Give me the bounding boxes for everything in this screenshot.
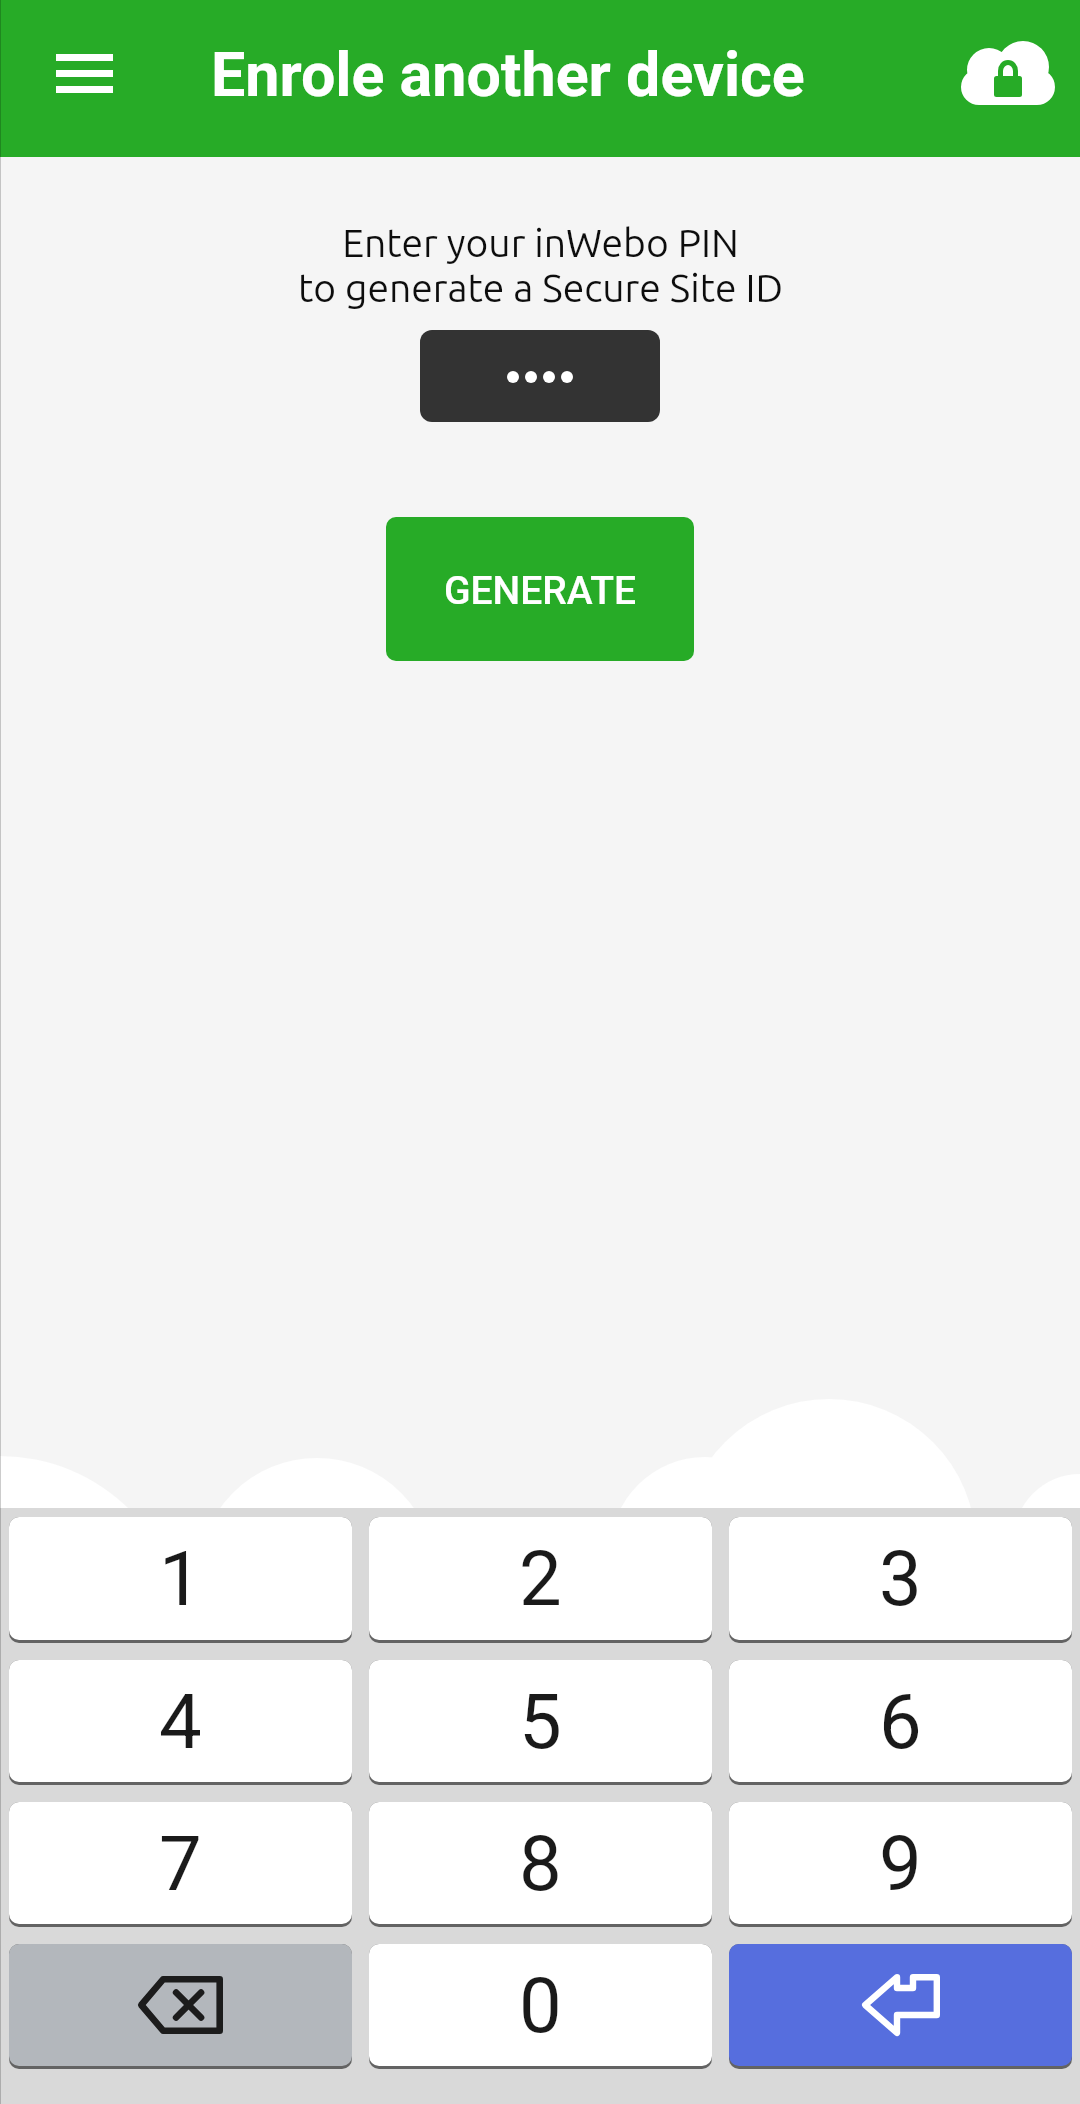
button[interactable]: 9 <box>729 1802 1072 1927</box>
staticText: 4 <box>159 1677 202 1766</box>
button[interactable]: 2 <box>369 1517 712 1643</box>
button[interactable]: Enter <box>729 1944 1072 2069</box>
staticText: 5 <box>519 1677 562 1766</box>
button[interactable]: Secure cloud storage <box>949 17 1067 141</box>
staticText: 0 <box>519 1961 562 2050</box>
staticText: Enrole another device <box>211 39 805 110</box>
staticText: 9 <box>879 1819 922 1908</box>
button[interactable]: Delete <box>9 1944 352 2069</box>
button[interactable]: 3 <box>729 1517 1072 1643</box>
button[interactable]: 0 <box>369 1944 712 2069</box>
button[interactable]: GENERATE <box>386 517 694 661</box>
staticText: 8 <box>519 1819 562 1908</box>
button[interactable]: 8 <box>369 1802 712 1927</box>
button[interactable]: Open navigation menu <box>28 17 140 141</box>
staticText: 1 <box>159 1534 202 1623</box>
button[interactable] <box>420 330 660 422</box>
button[interactable]: 4 <box>9 1660 352 1785</box>
staticText: 6 <box>879 1677 922 1766</box>
button[interactable]: 6 <box>729 1660 1072 1785</box>
staticText: Enter your inWebo PIN to generate a Secu… <box>298 221 783 309</box>
staticText: 7 <box>159 1819 202 1908</box>
staticText: 3 <box>879 1534 922 1623</box>
button[interactable]: 5 <box>369 1660 712 1785</box>
staticText: 2 <box>519 1534 562 1623</box>
button[interactable]: 1 <box>9 1517 352 1643</box>
staticText: GENERATE <box>444 568 637 614</box>
button[interactable]: 7 <box>9 1802 352 1927</box>
